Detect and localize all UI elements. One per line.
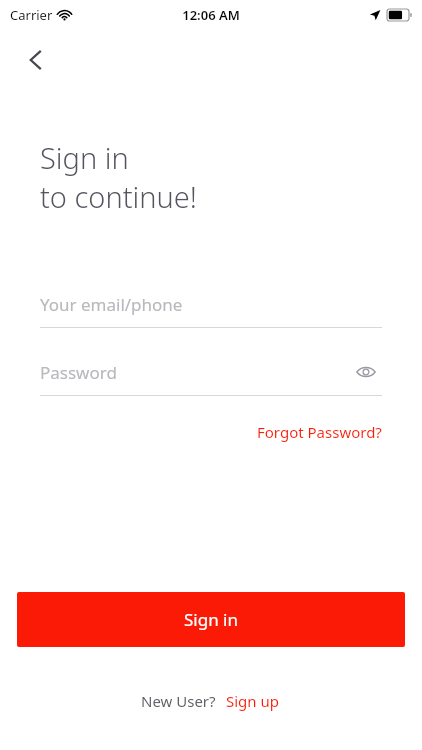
staticText: Carrier	[10, 6, 53, 24]
button[interactable]: Back	[14, 38, 58, 82]
button[interactable]: Forgot Password?	[257, 418, 382, 446]
staticText: Sign in	[184, 608, 238, 631]
staticText: 12:06 AM	[182, 6, 240, 24]
staticText: Password	[40, 361, 117, 384]
button[interactable]: Your email/phone	[40, 288, 382, 320]
staticText: Sign in	[40, 138, 129, 177]
staticText: Sign up	[226, 691, 279, 711]
staticText: New User?	[141, 691, 216, 711]
button[interactable]: Sign in	[17, 592, 405, 647]
button[interactable]: Password	[40, 356, 382, 388]
button[interactable]: Show password	[350, 356, 382, 388]
button[interactable]: Sign up	[224, 687, 281, 715]
staticText: Your email/phone	[40, 293, 183, 316]
staticText: Forgot Password?	[257, 422, 382, 442]
staticText: to continue!	[40, 177, 197, 216]
